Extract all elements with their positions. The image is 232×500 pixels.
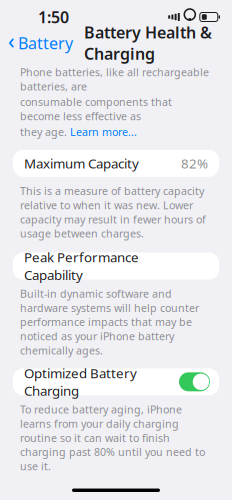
staticText: Peak Performance Capability [24,248,139,284]
staticText: This is a measure of battery capacity re… [20,184,206,240]
button[interactable]: Optimized Battery Charging [13,368,219,395]
staticText: 1:50 [38,6,69,28]
staticText: Phone batteries, like all rechargeable b… [20,65,209,93]
staticText: Maximum Capacity [24,154,139,172]
staticText: Learn more... [70,125,137,139]
staticText: Built-in dynamic software and hardware s… [20,286,199,357]
staticText: consumable components that become less e… [20,95,172,123]
staticText: Battery Health & Charging [84,22,212,64]
staticText: Optimized Battery Charging [24,364,137,399]
button[interactable]: Learn more... [70,125,137,139]
staticText: 82% [181,154,208,172]
button[interactable]: Battery [0,28,77,58]
staticText: To reduce battery aging, iPhone learns f… [20,402,205,473]
staticText: they age. [20,125,70,139]
staticText: Battery [18,32,73,54]
